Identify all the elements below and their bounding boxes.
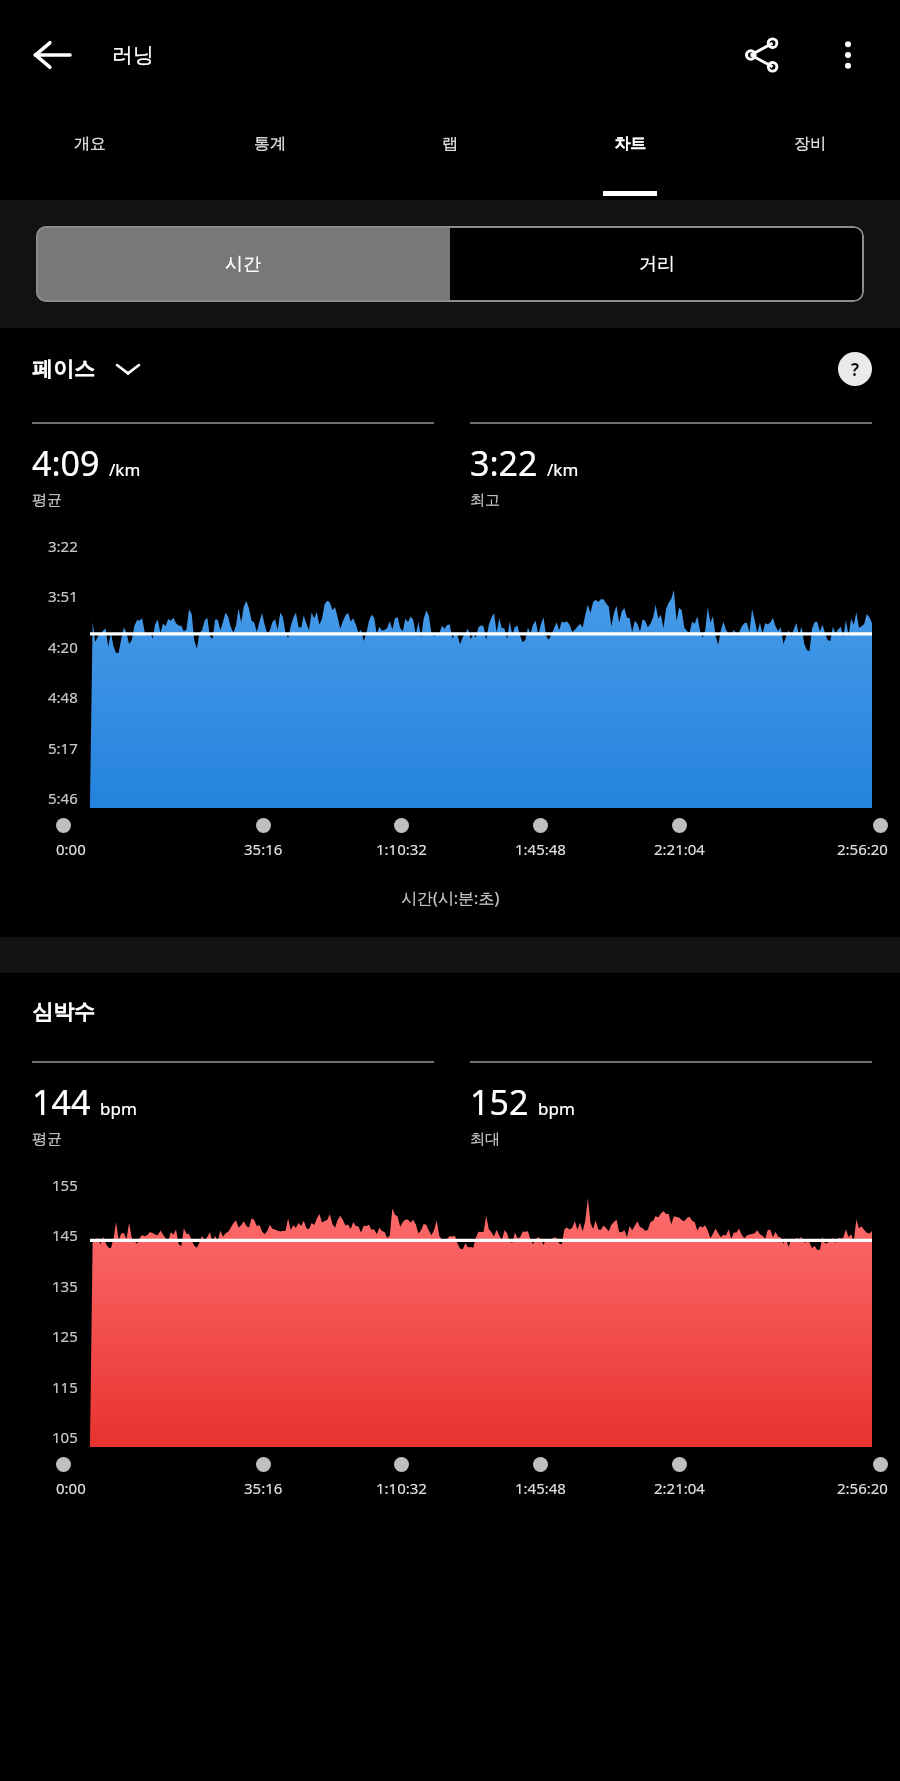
staticText: 5:17: [48, 738, 78, 758]
staticText: 2:56:20: [837, 1478, 888, 1498]
staticText: 심박수: [32, 999, 95, 1025]
staticText: 장비: [794, 134, 826, 154]
button[interactable]: 시간: [36, 226, 450, 302]
button[interactable]: 차트: [540, 110, 720, 200]
staticText: 랩: [442, 134, 458, 154]
staticText: 페이스: [32, 356, 95, 382]
staticText: 거리: [639, 253, 675, 276]
button[interactable]: 개요: [0, 110, 180, 200]
staticText: 3:22: [48, 536, 78, 556]
staticText: 125: [52, 1326, 78, 1346]
staticText: 최대: [470, 1130, 500, 1149]
staticText: 105: [52, 1427, 78, 1447]
staticText: 1:45:48: [515, 1478, 566, 1498]
staticText: 2:21:04: [654, 1478, 705, 1498]
staticText: 1:45:48: [515, 839, 566, 859]
staticText: 평균: [32, 491, 62, 510]
button[interactable]: 페이스: [32, 356, 139, 382]
staticText: 3:51: [48, 586, 78, 606]
staticText: 2:56:20: [837, 839, 888, 859]
staticText: ?: [851, 358, 860, 381]
staticText: 145: [52, 1225, 78, 1245]
staticText: 러닝: [112, 42, 154, 68]
staticText: 1:10:32: [376, 1478, 427, 1498]
staticText: 115: [52, 1377, 78, 1397]
staticText: 평균: [32, 1130, 62, 1149]
staticText: 4:20: [48, 637, 78, 657]
staticText: 통계: [254, 134, 286, 154]
staticText: 5:46: [48, 788, 78, 808]
button[interactable]: 통계: [180, 110, 360, 200]
staticText: 2:21:04: [654, 839, 705, 859]
staticText: 35:16: [244, 1478, 283, 1498]
button[interactable]: More options: [816, 23, 880, 87]
button[interactable]: Share: [730, 23, 794, 87]
button[interactable]: 랩: [360, 110, 540, 200]
staticText: 135: [52, 1276, 78, 1296]
staticText: 4:48: [48, 687, 78, 707]
staticText: bpm: [538, 1097, 575, 1120]
staticText: 35:16: [244, 839, 283, 859]
staticText: 시간: [225, 253, 261, 276]
staticText: /km: [547, 458, 579, 481]
staticText: /km: [109, 458, 141, 481]
staticText: 152: [470, 1079, 529, 1125]
button[interactable]: Back: [20, 23, 84, 87]
staticText: 시간(시:분:초): [401, 887, 500, 909]
button[interactable]: 거리: [450, 226, 864, 302]
staticText: 0:00: [56, 1478, 86, 1498]
button[interactable]: Help: [838, 352, 872, 386]
staticText: 차트: [614, 134, 646, 154]
staticText: 0:00: [56, 839, 86, 859]
staticText: 4:09: [32, 440, 100, 486]
staticText: 1:10:32: [376, 839, 427, 859]
staticText: 3:22: [470, 440, 538, 486]
staticText: 개요: [74, 134, 106, 154]
staticText: 최고: [470, 491, 500, 510]
button[interactable]: 장비: [720, 110, 900, 200]
staticText: 155: [52, 1175, 78, 1195]
staticText: bpm: [100, 1097, 137, 1120]
staticText: 144: [32, 1079, 91, 1125]
